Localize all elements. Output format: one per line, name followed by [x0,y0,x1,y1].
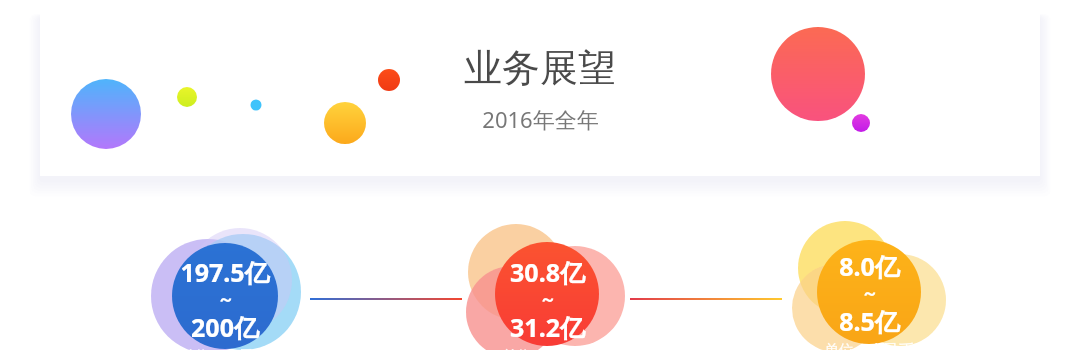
staticText: 2016年全年 [482,104,599,134]
staticText: 200亿 [191,310,259,344]
staticText: 单位：人民币 [824,341,914,350]
staticText: 单位：人民币 [180,347,270,350]
staticText: ～ [539,289,556,310]
staticText: 8.0亿 [839,249,900,283]
staticText: ～ [861,283,878,304]
staticText: 业务展望 [464,44,616,92]
staticText: 197.5亿 [180,255,270,289]
button[interactable]: 30.8亿 至 31.2亿 单位人民币 [432,255,662,350]
staticText: 8.5亿 [839,304,900,338]
staticText: 31.2亿 [510,310,585,344]
button[interactable]: 8.0亿 至 8.5亿 单位人民币 [754,249,984,350]
staticText: 单位：人民币 [502,347,592,350]
button[interactable]: 197.5亿 至 200亿 单位人民币 [110,255,340,350]
staticText: 30.8亿 [510,255,585,289]
staticText: ～ [217,289,234,310]
